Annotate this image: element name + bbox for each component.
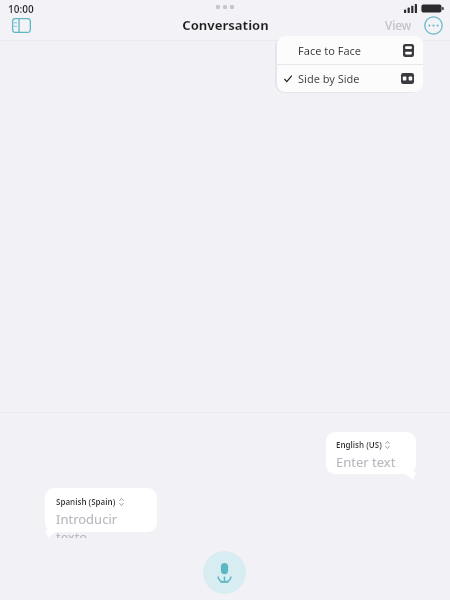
button[interactable]: View bbox=[381, 14, 416, 36]
staticText: Introducir texto bbox=[56, 510, 149, 538]
staticText: View bbox=[385, 17, 412, 33]
button[interactable]: Record speech bbox=[203, 551, 246, 594]
staticText: Enter text bbox=[336, 453, 396, 471]
button[interactable]: Face to Face bbox=[277, 36, 423, 64]
staticText: 10:00 bbox=[8, 2, 34, 16]
staticText: English (US) bbox=[336, 439, 382, 450]
button[interactable]: Show sidebar bbox=[6, 10, 36, 40]
button[interactable]: Side by Side bbox=[277, 65, 423, 92]
staticText: Face to Face bbox=[298, 43, 362, 58]
staticText: Conversation bbox=[182, 16, 269, 34]
button[interactable]: More options bbox=[422, 14, 444, 36]
staticText: Spanish (Spain) bbox=[56, 496, 116, 507]
staticText: Side by Side bbox=[298, 71, 360, 86]
